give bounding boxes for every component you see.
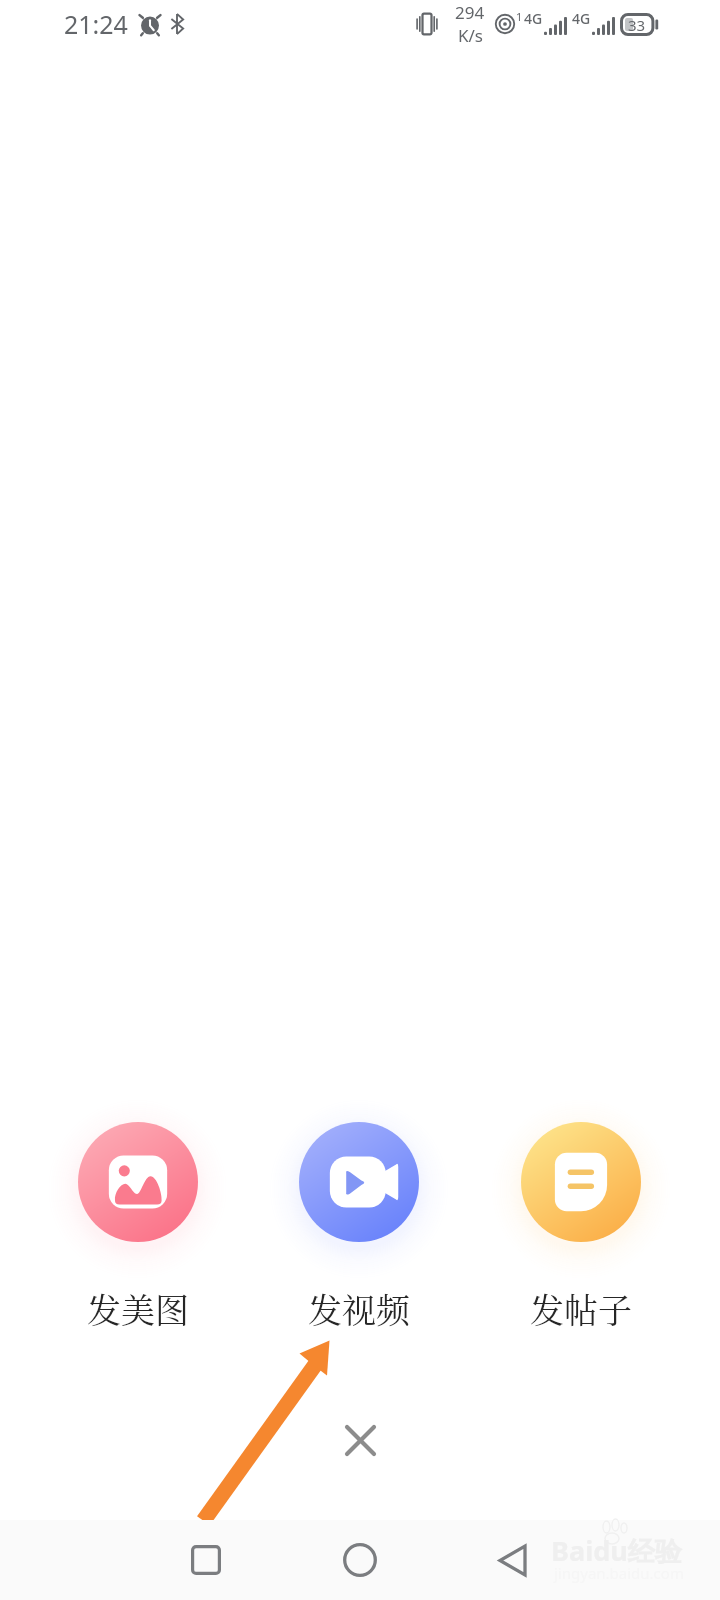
staticText: 发视频 [274,1284,444,1333]
button[interactable]: 发美图 [53,1122,223,1333]
staticText: Baidu经验 [551,1532,682,1569]
staticText: 4G [524,9,543,26]
staticText: 294 [455,1,485,24]
staticText: K/s [458,24,483,47]
staticText: 发帖子 [496,1284,666,1333]
button[interactable]: Home [320,1520,400,1600]
button[interactable]: 发视频 [274,1122,444,1333]
button[interactable]: Back [472,1520,552,1600]
staticText: 4G [572,9,591,26]
staticText: 33 [628,15,646,35]
staticText: 21:24 [64,7,128,41]
staticText: 1 [516,9,523,22]
button[interactable]: Recent apps [166,1520,246,1600]
button[interactable]: 发帖子 [496,1122,666,1333]
button[interactable]: Close [330,1410,390,1470]
staticText: 发美图 [53,1284,223,1333]
